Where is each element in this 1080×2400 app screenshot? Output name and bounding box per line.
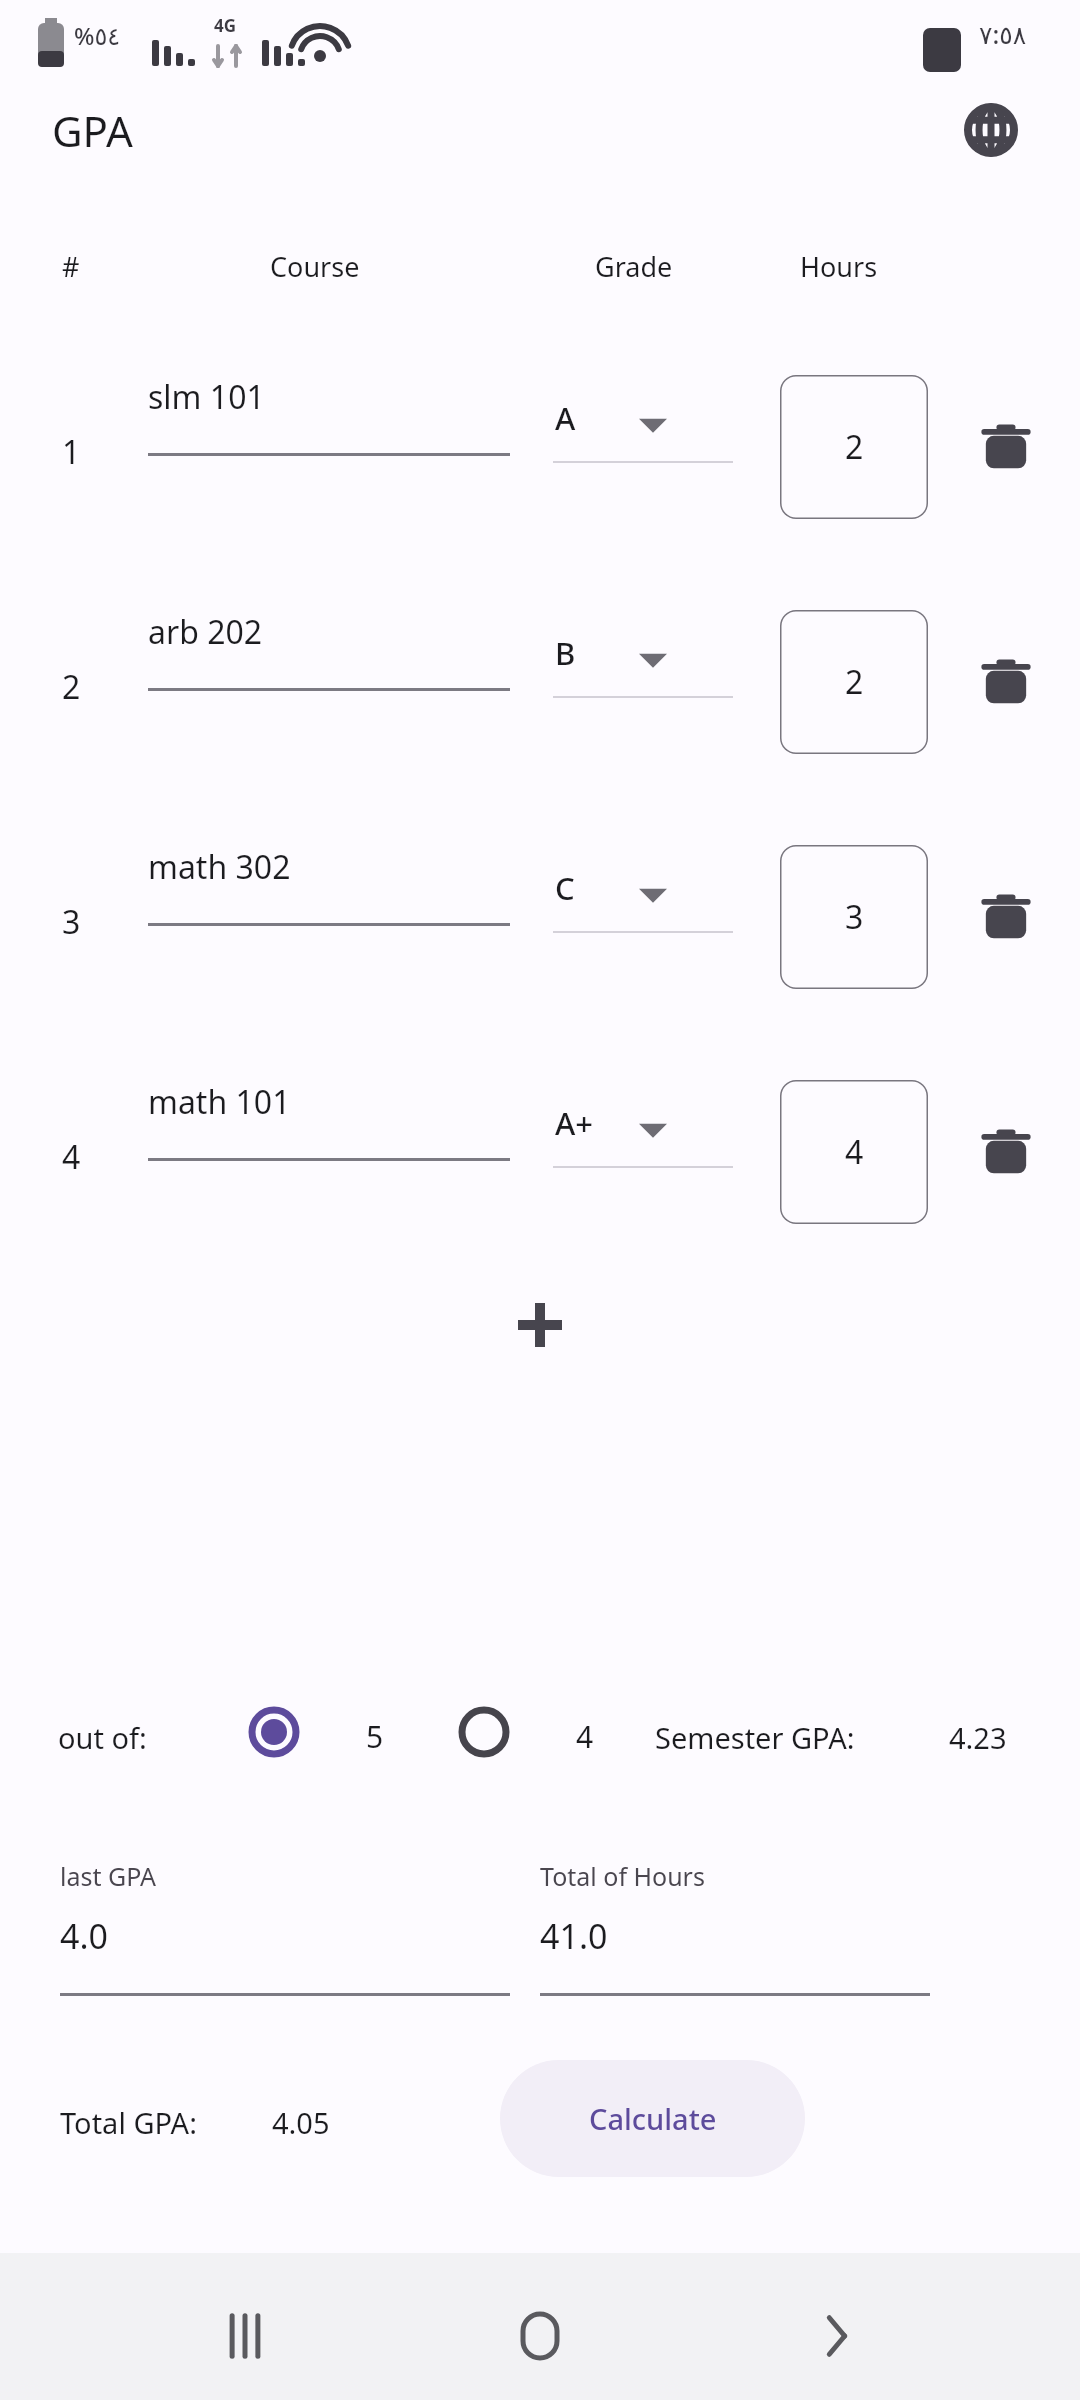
button[interactable]: Out of 4	[442, 1690, 526, 1774]
button[interactable]: Back	[782, 2281, 892, 2391]
button[interactable]: Delete course	[962, 873, 1050, 961]
staticText: math 101	[148, 1080, 291, 1124]
button[interactable]: Language	[955, 94, 1027, 166]
staticText: %٥٤	[74, 19, 121, 52]
button[interactable]: slm 101	[148, 365, 510, 465]
staticText: Total of Hours	[540, 1859, 705, 1893]
staticText: Calculate	[589, 2099, 717, 2138]
button[interactable]: Home	[485, 2281, 595, 2391]
staticText: 4.0	[60, 1913, 109, 1959]
button[interactable]: last GPA	[60, 1845, 510, 2005]
staticText: math 302	[148, 845, 291, 889]
button[interactable]: Out of 5	[232, 1690, 316, 1774]
button[interactable]: A	[553, 385, 733, 477]
staticText: C	[555, 867, 575, 909]
button[interactable]: B	[553, 620, 733, 712]
staticText: arb 202	[148, 610, 263, 654]
staticText: A	[555, 397, 576, 439]
button[interactable]: Delete course	[962, 638, 1050, 726]
staticText: 4.05	[272, 2103, 330, 2142]
button[interactable]: C	[553, 855, 733, 947]
staticText: #	[62, 248, 80, 285]
button[interactable]: A+	[553, 1090, 733, 1182]
staticText: Grade	[595, 248, 673, 285]
staticText: B	[555, 632, 576, 674]
staticText: 4	[845, 1130, 864, 1174]
button[interactable]: 2	[780, 375, 928, 519]
staticText: last GPA	[60, 1859, 157, 1893]
staticText: 2	[62, 665, 81, 709]
staticText: ٧:٥٨	[979, 17, 1027, 51]
staticText: out of:	[58, 1718, 147, 1757]
staticText: 5	[366, 1716, 384, 1757]
button[interactable]: 3	[780, 845, 928, 989]
staticText: 4.23	[949, 1718, 1007, 1757]
staticText: 2	[845, 660, 864, 704]
staticText: A+	[555, 1102, 594, 1144]
button[interactable]: 4	[780, 1080, 928, 1224]
button[interactable]: Delete course	[962, 1108, 1050, 1196]
staticText: 1	[62, 430, 81, 474]
staticText: Semester GPA:	[655, 1718, 855, 1757]
button[interactable]: Calculate	[500, 2060, 805, 2177]
button[interactable]: Add course	[490, 1275, 590, 1375]
button[interactable]: Total of Hours	[540, 1845, 930, 2005]
staticText: 4	[576, 1716, 594, 1757]
staticText: GPA	[52, 102, 133, 159]
staticText: 2	[845, 425, 864, 469]
button[interactable]: arb 202	[148, 600, 510, 700]
staticText: 4G	[214, 14, 237, 37]
button[interactable]: Recent apps	[190, 2281, 300, 2391]
button[interactable]: math 302	[148, 835, 510, 935]
staticText: slm 101	[148, 375, 265, 419]
button[interactable]: math 101	[148, 1070, 510, 1170]
staticText: Course	[270, 248, 360, 285]
staticText: Total GPA:	[60, 2103, 197, 2142]
staticText: 3	[845, 895, 864, 939]
staticText: 3	[62, 900, 81, 944]
button[interactable]: Delete course	[962, 403, 1050, 491]
staticText: Hours	[800, 248, 878, 285]
button[interactable]: 2	[780, 610, 928, 754]
staticText: 4	[62, 1135, 81, 1179]
staticText: 41.0	[540, 1913, 608, 1959]
